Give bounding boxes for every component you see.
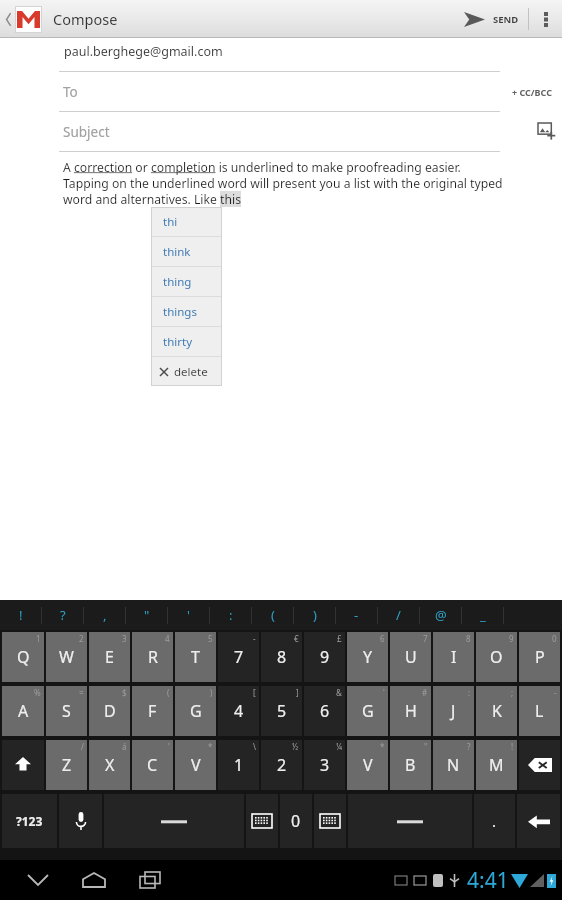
button[interactable]: Home xyxy=(74,860,114,900)
button[interactable]: ' xyxy=(347,686,388,736)
staticText: Z xyxy=(62,754,72,776)
button[interactable]: 5 xyxy=(175,632,216,682)
button[interactable]: SEND xyxy=(455,0,528,38)
button[interactable]: 7 xyxy=(390,632,431,682)
button[interactable]: Back xyxy=(18,860,58,900)
staticText: € xyxy=(294,633,299,644)
button[interactable]: - xyxy=(519,686,560,736)
button[interactable]: ' xyxy=(168,600,209,630)
button[interactable]: ! xyxy=(0,600,41,630)
button[interactable]: Backspace xyxy=(519,740,560,790)
button[interactable]: [ xyxy=(218,686,259,736)
button[interactable]: Navigate up xyxy=(0,0,44,38)
button[interactable]: Shift xyxy=(2,740,44,790)
button[interactable]: + CC/BCC xyxy=(502,86,562,98)
button[interactable]: / xyxy=(378,600,419,630)
button[interactable]: ) xyxy=(294,600,335,630)
staticText: X xyxy=(105,754,115,776)
button[interactable]: Subject xyxy=(63,112,532,151)
button[interactable]: Recent apps xyxy=(130,860,170,900)
button[interactable]: ; xyxy=(476,686,517,736)
button[interactable]: ) xyxy=(175,686,216,736)
button[interactable]: _ xyxy=(462,600,503,630)
staticText: 4 xyxy=(234,700,244,722)
button[interactable]: Attach image xyxy=(532,117,562,147)
button[interactable]: ! xyxy=(476,740,517,790)
button[interactable]: Period xyxy=(474,794,515,848)
staticText: + CC/BCC xyxy=(512,86,552,98)
button[interactable]: Voice input xyxy=(59,794,102,848)
button[interactable]: á xyxy=(89,740,130,790)
button[interactable]: delete xyxy=(151,357,222,386)
button[interactable]: " xyxy=(126,600,167,630)
button[interactable]: ? xyxy=(433,740,474,790)
button[interactable]: Enter xyxy=(517,794,560,848)
button[interactable]: 4 xyxy=(132,632,173,682)
staticText: & xyxy=(336,687,342,698)
button[interactable]: Zero xyxy=(280,794,312,848)
button[interactable]: Space xyxy=(348,794,472,848)
button[interactable]: Keyboard settings xyxy=(246,794,278,848)
button[interactable]: ¼ xyxy=(304,740,345,790)
button[interactable]: Switch keyboard xyxy=(314,794,346,848)
button[interactable]: @ xyxy=(420,600,461,630)
button[interactable]: : xyxy=(210,600,251,630)
button[interactable]: - xyxy=(218,632,259,682)
staticText: * xyxy=(380,741,385,752)
staticText: V xyxy=(191,754,201,776)
staticText: 7 xyxy=(234,646,244,668)
button[interactable]: ] xyxy=(261,686,302,736)
staticText: SEND xyxy=(493,13,519,26)
button[interactable]: & xyxy=(304,686,345,736)
button[interactable]: £ xyxy=(304,632,345,682)
staticText: % xyxy=(34,687,41,698)
staticText: = xyxy=(79,687,84,698)
button[interactable]: % xyxy=(2,686,44,736)
button[interactable]: To xyxy=(63,72,502,111)
button[interactable]: € xyxy=(261,632,302,682)
staticText: delete xyxy=(174,364,208,380)
button[interactable]: / xyxy=(46,740,87,790)
staticText: E xyxy=(105,646,114,668)
button[interactable]: \ xyxy=(218,740,259,790)
button[interactable]: " xyxy=(390,740,431,790)
button[interactable]: - xyxy=(336,600,377,630)
button[interactable]: $ xyxy=(89,686,130,736)
button[interactable]: 9 xyxy=(476,632,517,682)
button[interactable]: : xyxy=(433,686,474,736)
staticText: A xyxy=(18,700,29,722)
staticText: ) xyxy=(210,687,213,698)
button[interactable]: Symbols xyxy=(2,794,57,848)
staticText: B xyxy=(405,754,416,776)
button[interactable]: thing xyxy=(151,267,222,296)
button[interactable]: think xyxy=(151,237,222,266)
button[interactable]: ? xyxy=(42,600,83,630)
button[interactable]: More options xyxy=(529,0,562,38)
staticText: 6 xyxy=(380,633,385,644)
button[interactable]: 8 xyxy=(433,632,474,682)
staticText: _ xyxy=(480,606,486,624)
staticText: 9 xyxy=(509,633,514,644)
button[interactable]: 0 xyxy=(519,632,560,682)
button[interactable]: ½ xyxy=(261,740,302,790)
staticText: N xyxy=(447,754,460,776)
button[interactable]: ( xyxy=(252,600,293,630)
button[interactable]: thirty xyxy=(151,327,222,356)
button[interactable]: 1 xyxy=(2,632,44,682)
button[interactable]: 2 xyxy=(46,632,87,682)
button[interactable]: ( xyxy=(132,686,173,736)
staticText: 1 xyxy=(36,633,41,644)
button[interactable]: thi xyxy=(151,207,222,236)
button[interactable]: * xyxy=(175,740,216,790)
staticText: 6 xyxy=(320,700,330,722)
staticText: G xyxy=(362,700,374,722)
button[interactable]: Space xyxy=(104,794,244,848)
button[interactable]: 6 xyxy=(347,632,388,682)
button[interactable]: 3 xyxy=(89,632,130,682)
button[interactable]: things xyxy=(151,297,222,326)
button[interactable]: # xyxy=(390,686,431,736)
button[interactable]: * xyxy=(347,740,388,790)
button[interactable]: , xyxy=(84,600,125,630)
button[interactable]: ' xyxy=(132,740,173,790)
button[interactable]: = xyxy=(46,686,87,736)
